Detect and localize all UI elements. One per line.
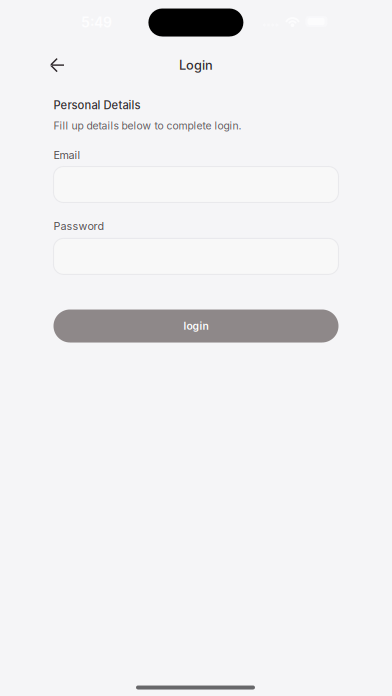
staticText: Password (53, 220, 104, 233)
staticText: Email (53, 149, 80, 162)
staticText: Fill up details below to complete login. (53, 119, 241, 132)
button[interactable]: login (53, 309, 338, 342)
button[interactable]: Back (40, 48, 74, 82)
staticText: Login (179, 57, 213, 73)
staticText: Personal Details (53, 98, 140, 112)
staticText: login (183, 320, 208, 332)
